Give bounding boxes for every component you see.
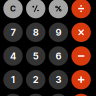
button[interactable]: 1 bbox=[3, 70, 23, 89]
button[interactable]: 4 bbox=[3, 46, 23, 66]
button[interactable]: 2 bbox=[26, 70, 45, 89]
staticText: C bbox=[10, 4, 16, 13]
button[interactable]: Plus minus bbox=[26, 0, 45, 18]
staticText: 9 bbox=[55, 27, 61, 38]
button[interactable]: Minus bbox=[71, 46, 91, 66]
staticText: 5 bbox=[33, 50, 39, 62]
button[interactable]: Divide bbox=[71, 0, 91, 18]
button[interactable]: Plus bbox=[71, 70, 91, 89]
button[interactable]: 6 bbox=[49, 46, 68, 66]
button[interactable]: 3 bbox=[49, 70, 68, 89]
button[interactable]: 9 bbox=[49, 23, 68, 42]
staticText: 3 bbox=[55, 74, 61, 85]
button[interactable]: Multiply bbox=[71, 23, 91, 42]
button[interactable]: 7 bbox=[3, 23, 23, 42]
staticText: 4 bbox=[10, 50, 16, 62]
button[interactable]: 8 bbox=[26, 23, 45, 42]
button[interactable]: . bbox=[26, 94, 45, 96]
button[interactable]: 5 bbox=[26, 46, 45, 66]
button[interactable]: = bbox=[49, 94, 68, 96]
staticText: 6 bbox=[55, 50, 61, 62]
button[interactable]: 0 bbox=[3, 94, 23, 96]
button[interactable]: Percent bbox=[49, 0, 68, 18]
staticText: 2 bbox=[33, 74, 39, 85]
staticText: 1 bbox=[11, 74, 15, 85]
staticText: 7 bbox=[10, 27, 15, 38]
staticText: 8 bbox=[33, 27, 39, 38]
button[interactable]: C bbox=[3, 0, 23, 18]
button[interactable]: Equals bbox=[71, 94, 91, 96]
